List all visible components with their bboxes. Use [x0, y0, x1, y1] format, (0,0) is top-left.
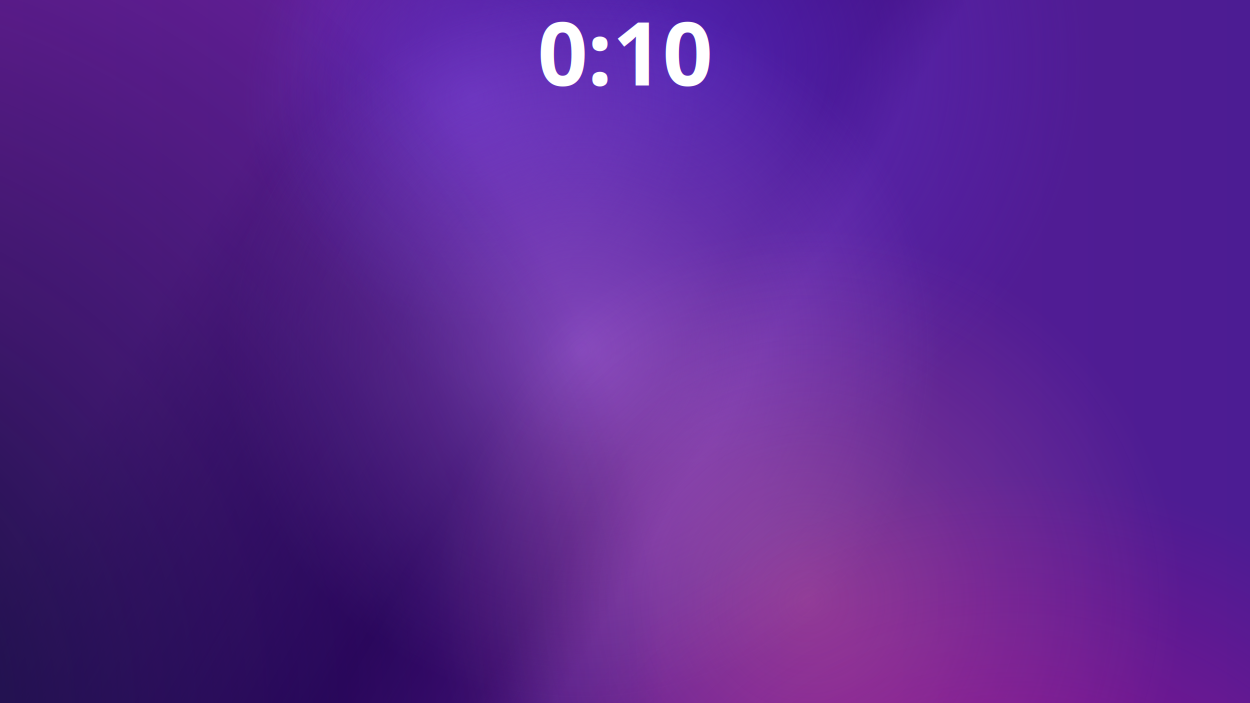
- staticText: 0:10: [537, 0, 712, 110]
